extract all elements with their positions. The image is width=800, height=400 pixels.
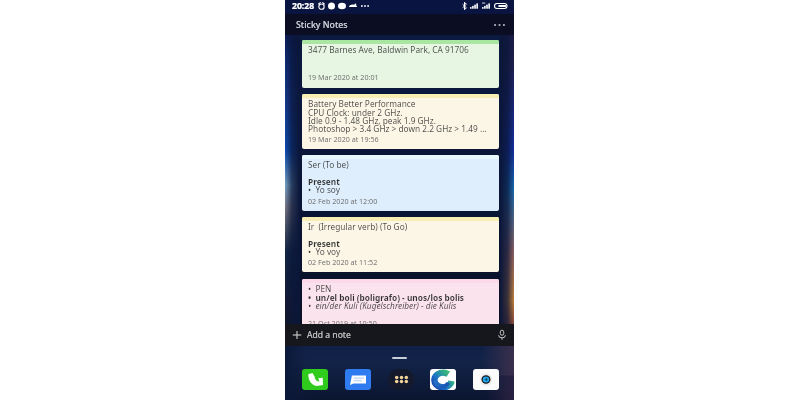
staticText: Add a note <box>307 329 351 341</box>
staticText: • PEN • un/el boli (boligrafo) - unos/lo… <box>308 283 465 311</box>
button[interactable]: Battery Better Performance CPU Clock: un… <box>302 94 499 149</box>
button[interactable]: Ir (Irregular verb) (To Go) Present • Yo… <box>302 217 499 272</box>
button[interactable]: 3477 Barnes Ave, Baldwin Park, CA 91706 <box>302 40 499 88</box>
staticText: 19 Mar 2020 at 19:56 <box>308 134 379 144</box>
staticText: Ser (To be) Present • Yo soy <box>308 159 349 195</box>
button[interactable]: Camera <box>473 369 499 390</box>
button[interactable]: Add a note <box>285 324 514 346</box>
button[interactable]: Ser (To be) Present • Yo soy <box>302 155 499 211</box>
staticText: Sticky Notes <box>296 19 348 31</box>
staticText: 19 Mar 2020 at 20:01 <box>308 72 379 82</box>
staticText: 3477 Barnes Ave, Baldwin Park, CA 91706 <box>308 44 469 55</box>
button[interactable]: Microsoft Edge <box>430 369 456 390</box>
staticText: 02 Feb 2020 at 11:52 <box>308 257 378 267</box>
button[interactable]: Messages <box>345 369 371 390</box>
button[interactable]: All apps <box>388 369 414 390</box>
staticText: 21 Oct 2019 at 10:50 <box>308 318 377 328</box>
staticText: Ir (Irregular verb) (To Go) Present • Yo… <box>308 221 408 257</box>
staticText: Battery Better Performance CPU Clock: un… <box>308 98 487 134</box>
button[interactable]: More options <box>491 17 507 33</box>
staticText: 20:28 <box>292 0 315 12</box>
button[interactable]: Phone <box>302 369 328 390</box>
button[interactable]: Voice input <box>497 329 507 341</box>
staticText: 02 Feb 2020 at 12:00 <box>308 196 378 206</box>
button[interactable]: • PEN • un/el boli (boligrafo) - unos/lo… <box>302 279 499 336</box>
